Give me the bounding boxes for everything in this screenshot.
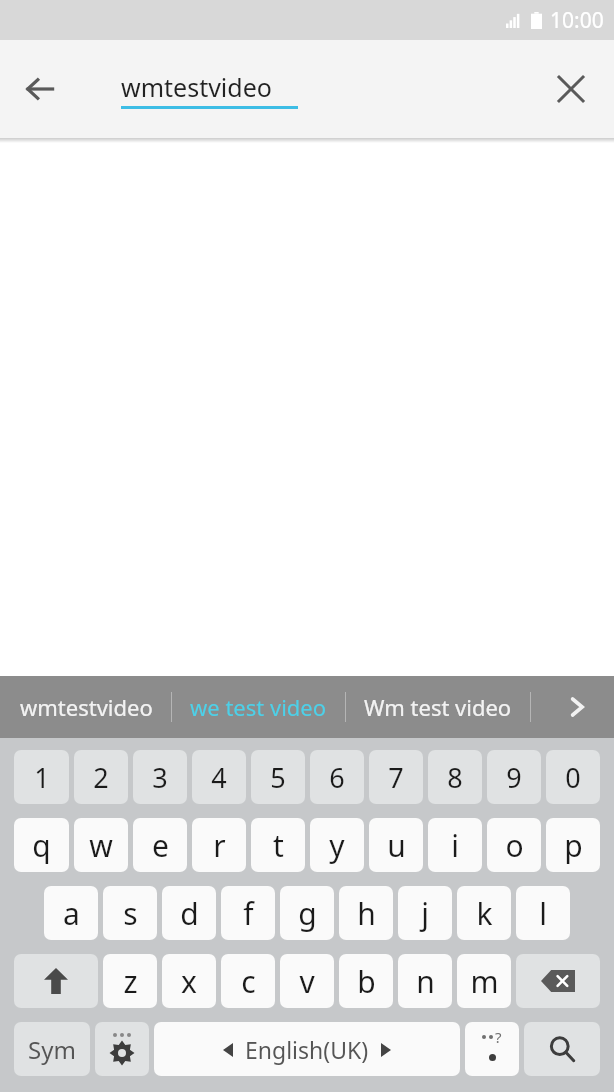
staticText: z <box>123 961 138 1002</box>
button[interactable]: s <box>103 886 157 940</box>
button[interactable]: r <box>192 818 246 872</box>
staticText: 4 <box>211 759 227 796</box>
button[interactable]: x <box>162 954 216 1008</box>
staticText: b <box>357 961 376 1002</box>
staticText: k <box>476 893 493 934</box>
button[interactable]: English(UK) <box>154 1022 460 1076</box>
staticText: t <box>273 825 284 866</box>
button[interactable]: Keyboard settings <box>95 1022 149 1076</box>
staticText: n <box>416 961 435 1002</box>
button[interactable]: 6 <box>310 750 364 804</box>
button[interactable]: k <box>457 886 511 940</box>
button[interactable]: y <box>310 818 364 872</box>
button[interactable]: u <box>369 818 423 872</box>
button[interactable]: e <box>133 818 187 872</box>
button[interactable]: wmtestvideo <box>16 686 157 728</box>
button[interactable]: Clear search <box>540 58 602 120</box>
staticText: ? <box>495 1027 502 1047</box>
staticText: 2 <box>93 759 109 796</box>
staticText: w <box>89 825 113 866</box>
button[interactable]: 5 <box>251 750 305 804</box>
staticText: a <box>63 893 80 934</box>
staticText: 1 <box>34 759 50 796</box>
button[interactable]: w <box>74 818 128 872</box>
button[interactable]: a <box>44 886 98 940</box>
button[interactable]: q <box>14 818 69 872</box>
staticText: i <box>451 825 459 866</box>
button[interactable]: 7 <box>369 750 423 804</box>
staticText: 10:00 <box>550 6 604 35</box>
button[interactable]: p <box>546 818 600 872</box>
button[interactable]: l <box>516 886 570 940</box>
staticText: o <box>505 825 524 866</box>
staticText: 9 <box>506 759 522 796</box>
button[interactable]: Sym <box>14 1022 90 1076</box>
button[interactable]: Wm test video <box>360 686 516 728</box>
button[interactable]: 4 <box>192 750 246 804</box>
button[interactable]: 2 <box>74 750 128 804</box>
staticText: 3 <box>152 759 168 796</box>
staticText: j <box>421 893 429 934</box>
staticText: English(UK) <box>245 1034 369 1065</box>
staticText: we test video <box>190 692 327 722</box>
button[interactable]: v <box>280 954 334 1008</box>
staticText: r <box>213 825 226 866</box>
button[interactable]: g <box>280 886 334 940</box>
button[interactable]: o <box>487 818 541 872</box>
staticText: wmtestvideo <box>20 692 153 722</box>
button[interactable]: m <box>457 954 511 1008</box>
button[interactable]: c <box>221 954 275 1008</box>
staticText: e <box>152 825 169 866</box>
staticText: 6 <box>329 759 345 796</box>
button[interactable]: z <box>103 954 157 1008</box>
staticText: f <box>243 893 254 934</box>
button[interactable]: i <box>428 818 482 872</box>
button[interactable]: j <box>398 886 452 940</box>
button[interactable]: b <box>339 954 393 1008</box>
button[interactable]: 9 <box>487 750 541 804</box>
staticText: q <box>32 825 51 866</box>
staticText: g <box>298 893 317 934</box>
button[interactable]: 1 <box>14 750 69 804</box>
button[interactable]: 8 <box>428 750 482 804</box>
button[interactable]: n <box>398 954 452 1008</box>
staticText: v <box>299 961 315 1002</box>
staticText: Sym <box>28 1033 76 1066</box>
staticText: l <box>539 893 547 934</box>
staticText: x <box>181 961 197 1002</box>
button[interactable]: Back <box>8 57 72 121</box>
button[interactable]: More suggestions <box>550 680 604 734</box>
button[interactable]: t <box>251 818 305 872</box>
staticText: 8 <box>447 759 463 796</box>
button[interactable]: 0 <box>546 750 600 804</box>
button[interactable]: Period and punctuation <box>465 1022 519 1076</box>
staticText: y <box>329 825 345 866</box>
staticText: s <box>123 893 138 934</box>
staticText: 5 <box>270 759 286 796</box>
button[interactable]: Backspace <box>516 954 600 1008</box>
staticText: Wm test video <box>364 692 512 722</box>
button[interactable]: f <box>221 886 275 940</box>
staticText: wmtestvideo <box>121 70 272 104</box>
staticText: p <box>564 825 583 866</box>
staticText: 0 <box>565 759 581 796</box>
button[interactable]: we test video <box>186 686 331 728</box>
staticText: u <box>387 825 406 866</box>
staticText: d <box>180 893 199 934</box>
button[interactable]: Search <box>524 1022 600 1076</box>
staticText: c <box>241 961 256 1002</box>
button[interactable]: d <box>162 886 216 940</box>
button[interactable]: 3 <box>133 750 187 804</box>
staticText: h <box>357 893 376 934</box>
staticText: 7 <box>388 759 404 796</box>
staticText: m <box>470 961 499 1002</box>
button[interactable]: h <box>339 886 393 940</box>
button[interactable]: Shift <box>14 954 98 1008</box>
